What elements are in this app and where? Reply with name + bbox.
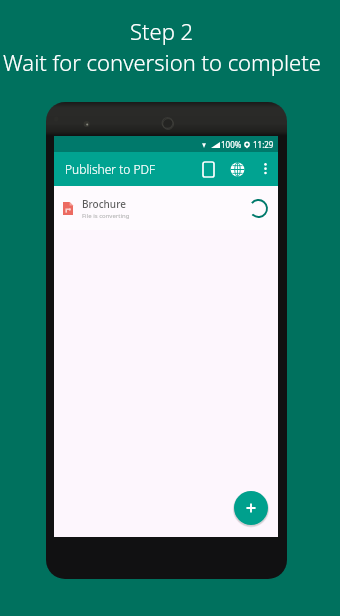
staticText: Step 2 [130,16,194,46]
staticText: 11:29 [253,139,274,150]
staticText: Publisher to PDF [65,161,156,177]
button[interactable]: More options [253,157,277,181]
staticText: 100% [221,139,242,150]
button[interactable]: Add file [234,491,268,525]
staticText: Brochure [82,197,126,211]
button[interactable]: Brochure [54,186,278,230]
button[interactable]: Device preview [196,157,220,181]
staticText: File is converting [82,212,130,220]
button[interactable]: Language [225,157,249,181]
staticText: Wait for conversion to complete [3,47,321,77]
